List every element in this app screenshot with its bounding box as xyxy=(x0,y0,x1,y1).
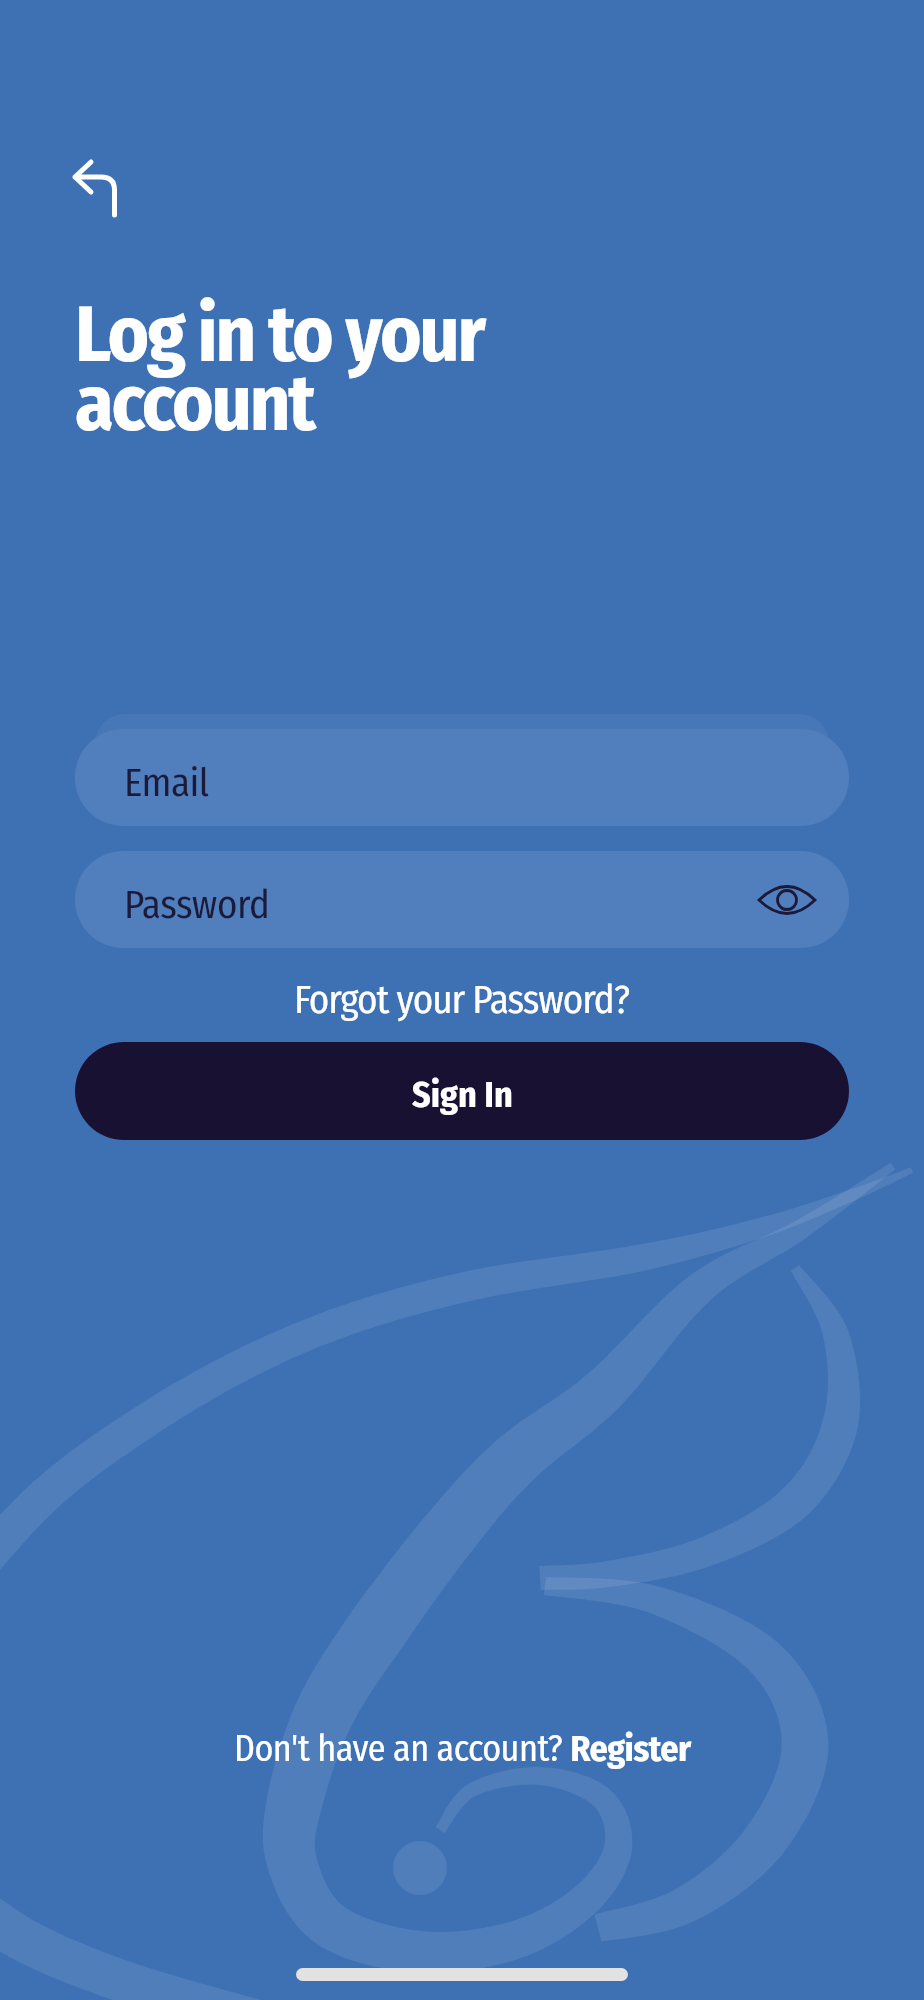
button[interactable] xyxy=(58,143,132,229)
staticText: Password xyxy=(124,882,270,929)
staticText: Email xyxy=(124,760,209,807)
staticText: Log in to your xyxy=(75,288,484,382)
staticText: account xyxy=(75,357,314,451)
button[interactable] xyxy=(745,864,829,936)
staticText: Sign In xyxy=(412,1073,513,1116)
button[interactable]: Password xyxy=(75,851,849,948)
button[interactable]: Sign In xyxy=(75,1042,849,1140)
button[interactable]: Email xyxy=(75,729,849,826)
button[interactable]: Forgot your Password? xyxy=(294,977,630,1024)
button[interactable]: Don't have an account? Register xyxy=(234,1727,691,1770)
